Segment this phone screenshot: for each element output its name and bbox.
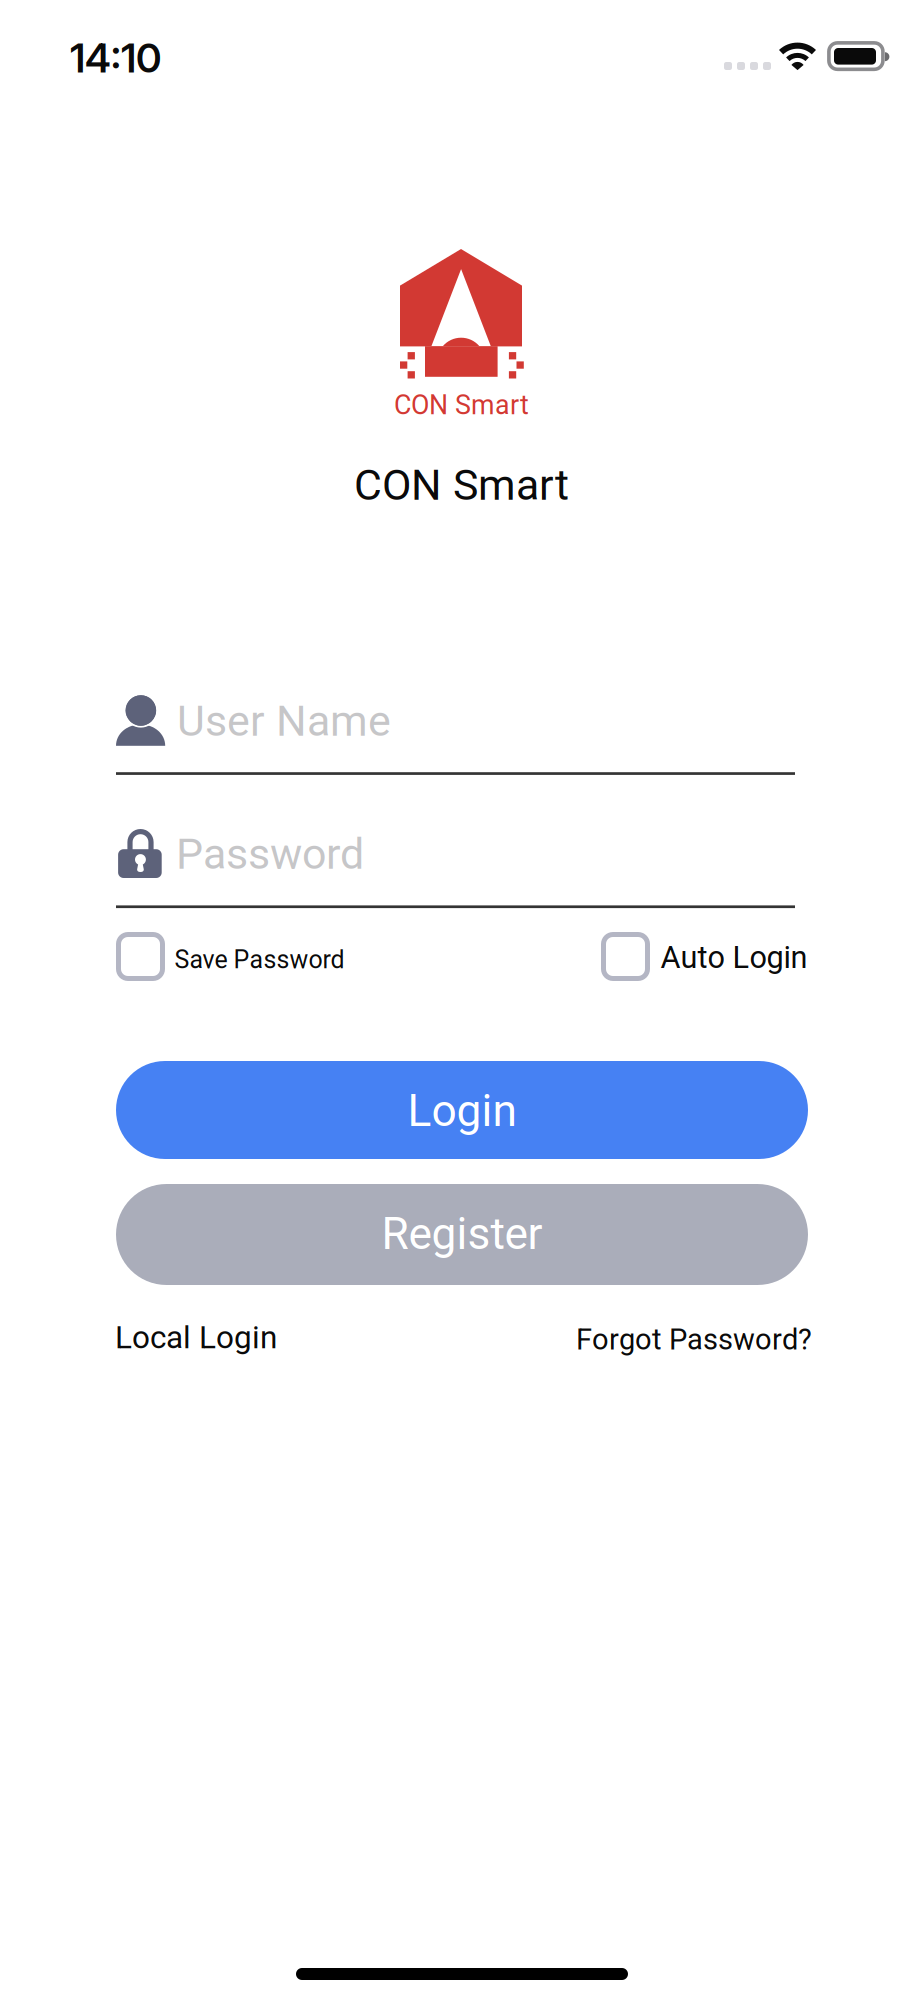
staticText: Forgot Password? — [576, 1322, 812, 1357]
staticText: User Name — [177, 696, 391, 746]
button[interactable]: User Name — [116, 695, 795, 775]
button[interactable]: Save Password — [116, 932, 348, 981]
button[interactable]: Forgot Password? — [576, 1322, 812, 1357]
staticText: Password — [176, 829, 364, 879]
staticText: Local Login — [115, 1319, 277, 1356]
button[interactable]: Local Login — [115, 1319, 277, 1356]
button[interactable]: Auto Login — [601, 932, 808, 981]
button[interactable]: Login — [116, 1061, 808, 1159]
staticText: 14:10 — [70, 34, 161, 82]
staticText: Save Password — [174, 945, 344, 974]
staticText: CON Smart — [394, 389, 529, 421]
staticText: CON Smart — [354, 460, 569, 510]
button[interactable]: Password — [116, 827, 795, 909]
staticText: Auto Login — [660, 939, 807, 975]
staticText: Login — [407, 1085, 516, 1137]
button[interactable]: Register — [116, 1184, 808, 1285]
staticText: Register — [381, 1208, 542, 1260]
